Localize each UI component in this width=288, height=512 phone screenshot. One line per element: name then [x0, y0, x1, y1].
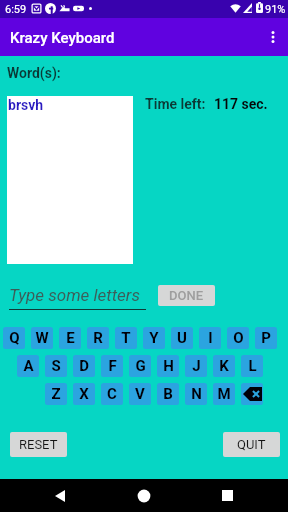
staticText: X	[79, 385, 89, 403]
button[interactable]: P	[255, 327, 277, 349]
button[interactable]: C	[101, 383, 123, 405]
button[interactable]: T	[115, 327, 137, 349]
staticText: G	[135, 357, 146, 375]
staticText: Q	[9, 329, 20, 347]
staticText: DONE	[169, 288, 204, 303]
staticText: Y	[149, 329, 159, 347]
staticText: M	[217, 385, 231, 403]
button[interactable]: M	[213, 383, 235, 405]
staticText: V	[135, 385, 145, 403]
button[interactable]: A	[17, 355, 39, 377]
staticText: Type some letters	[9, 285, 140, 305]
button[interactable]: Q	[3, 327, 25, 349]
button[interactable]: O	[227, 327, 249, 349]
button[interactable]: More options	[258, 18, 288, 56]
staticText: A	[23, 357, 34, 375]
button[interactable]: QUIT	[223, 432, 280, 457]
staticText: W	[35, 329, 49, 347]
staticText: J	[192, 357, 201, 375]
staticText: brsvh	[8, 97, 44, 113]
staticText: L	[248, 357, 257, 375]
staticText: K	[219, 357, 229, 375]
staticText: F	[108, 357, 117, 375]
button[interactable]: J	[185, 355, 207, 377]
staticText: D	[79, 357, 89, 375]
button[interactable]: Backspace	[241, 383, 263, 405]
staticText: 6:59	[5, 3, 27, 16]
staticText: H	[163, 357, 174, 375]
staticText: O	[233, 329, 244, 347]
staticText: N	[191, 385, 202, 403]
staticText: 117 sec.	[214, 96, 268, 112]
button[interactable]: V	[129, 383, 151, 405]
button[interactable]: E	[59, 327, 81, 349]
staticText: Z	[51, 385, 61, 403]
staticText: RESET	[19, 437, 58, 452]
staticText: C	[107, 385, 117, 403]
button[interactable]: I	[199, 327, 221, 349]
staticText: QUIT	[237, 437, 266, 452]
button[interactable]: Z	[45, 383, 67, 405]
staticText: T	[121, 329, 131, 347]
button[interactable]: K	[213, 355, 235, 377]
button[interactable]: Recent apps	[212, 479, 242, 512]
button[interactable]: DONE	[158, 285, 215, 306]
staticText: Word(s):	[7, 65, 61, 81]
staticText: E	[66, 329, 75, 347]
staticText: B	[163, 385, 173, 403]
button[interactable]: B	[157, 383, 179, 405]
staticText: I	[208, 329, 213, 347]
staticText: S	[51, 357, 61, 375]
button[interactable]: L	[241, 355, 263, 377]
button[interactable]: H	[157, 355, 179, 377]
staticText: 91%	[265, 3, 286, 16]
button[interactable]: N	[185, 383, 207, 405]
button[interactable]: RESET	[10, 432, 67, 457]
button[interactable]: U	[171, 327, 193, 349]
button[interactable]: F	[101, 355, 123, 377]
staticText: Time left:	[145, 96, 206, 112]
button[interactable]: G	[129, 355, 151, 377]
staticText: P	[261, 329, 271, 347]
button[interactable]: D	[73, 355, 95, 377]
button[interactable]: S	[45, 355, 67, 377]
button[interactable]: W	[31, 327, 53, 349]
button[interactable]: Back	[45, 479, 75, 512]
button[interactable]: Home	[129, 479, 159, 512]
button[interactable]: X	[73, 383, 95, 405]
staticText: Krazy Keyboard	[10, 29, 115, 47]
button[interactable]: R	[87, 327, 109, 349]
staticText: R	[93, 329, 103, 347]
button[interactable]: Y	[143, 327, 165, 349]
staticText: U	[177, 329, 187, 347]
